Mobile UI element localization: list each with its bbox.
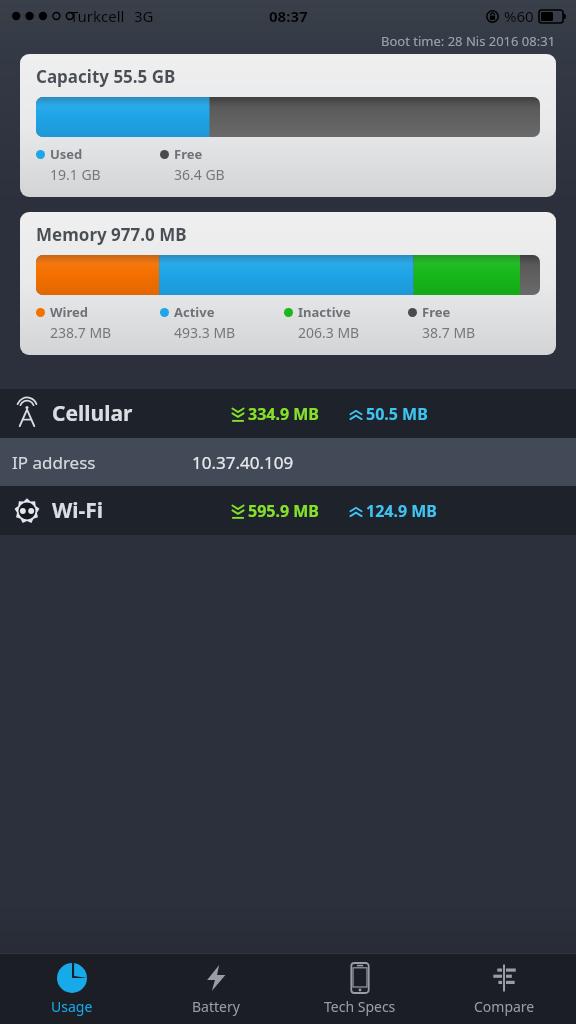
- staticText: 10.37.40.109: [192, 451, 294, 474]
- staticText: 36.4 GB: [174, 165, 225, 184]
- staticText: 206.3 MB: [298, 323, 360, 342]
- button[interactable]: IP address: [0, 438, 576, 486]
- staticText: Cellular: [52, 399, 133, 428]
- staticText: 19.1 GB: [50, 165, 101, 184]
- button[interactable]: Cellular: [0, 389, 576, 438]
- staticText: 124.9 MB: [366, 500, 437, 522]
- other: Cellular: [13, 400, 41, 428]
- staticText: Usage: [51, 997, 93, 1016]
- staticText: 595.9 MB: [248, 500, 319, 522]
- staticText: 334.9 MB: [248, 403, 319, 425]
- staticText: Wired: [50, 303, 88, 321]
- staticText: Capacity 55.5 GB: [36, 65, 176, 88]
- button[interactable]: Battery: [144, 954, 288, 1024]
- button[interactable]: Usage: [0, 954, 144, 1024]
- staticText: %60: [504, 6, 534, 26]
- button[interactable]: Tech Specs: [288, 954, 432, 1024]
- staticText: 493.3 MB: [174, 323, 236, 342]
- button[interactable]: Compare: [432, 954, 576, 1024]
- staticText: Memory 977.0 MB: [36, 223, 187, 246]
- staticText: Free: [422, 303, 451, 321]
- staticText: Free: [174, 145, 203, 163]
- staticText: Boot time: 28 Nis 2016 08:31: [381, 32, 556, 50]
- staticText: 238.7 MB: [50, 323, 112, 342]
- staticText: 3G: [134, 6, 154, 26]
- staticText: Battery: [192, 997, 240, 1016]
- staticText: Inactive: [298, 303, 351, 321]
- staticText: IP address: [12, 451, 96, 474]
- staticText: Compare: [474, 997, 535, 1016]
- button[interactable]: Wi-Fi: [0, 486, 576, 535]
- staticText: Used: [50, 145, 83, 163]
- staticText: 50.5 MB: [366, 403, 428, 425]
- staticText: 08:37: [269, 6, 308, 26]
- other: Wi-Fi: [12, 496, 42, 526]
- staticText: Active: [174, 303, 215, 321]
- staticText: Wi-Fi: [52, 496, 104, 525]
- staticText: 38.7 MB: [422, 323, 476, 342]
- staticText: Turkcell: [70, 6, 125, 26]
- staticText: Tech Specs: [324, 997, 396, 1016]
